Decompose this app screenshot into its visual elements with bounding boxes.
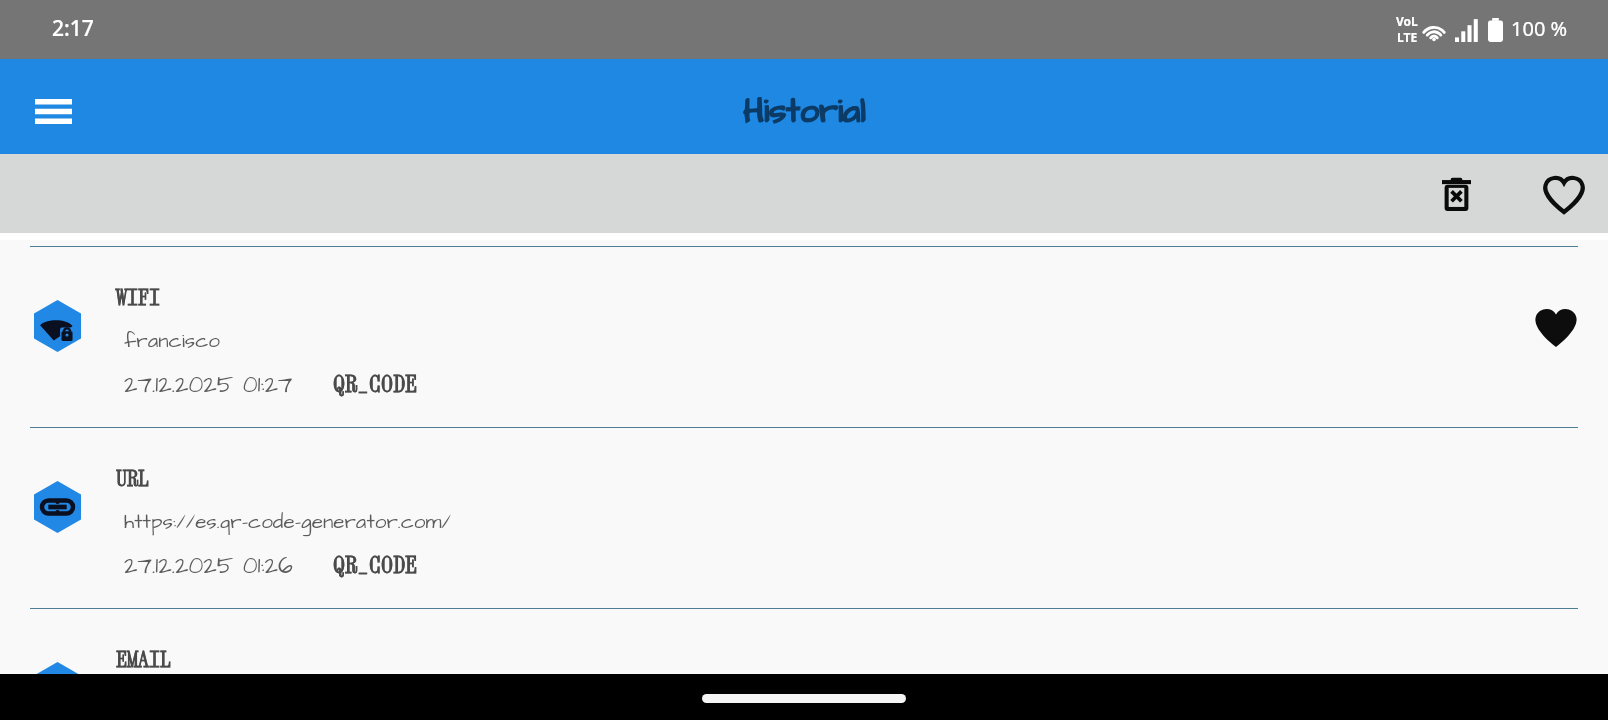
button[interactable]: Delete — [1422, 160, 1490, 228]
button[interactable]: EMAIL — [0, 608, 1608, 720]
staticText: QR_CODE — [333, 550, 417, 579]
staticText: WIFI — [116, 284, 161, 310]
staticText: WIFI — [116, 284, 161, 310]
staticText: LTE — [1397, 29, 1418, 45]
staticText: URL — [116, 465, 150, 491]
staticText: Historial — [744, 87, 867, 134]
staticText: QR_CODE — [333, 369, 417, 398]
button[interactable]: Favorite — [1525, 296, 1587, 358]
staticText: Historial — [743, 88, 866, 135]
staticText: 2:17 — [52, 14, 94, 43]
button[interactable]: WIFI — [0, 246, 1608, 426]
staticText: https://es.qr-code-generator.com/ — [124, 508, 451, 537]
staticText: francisco — [124, 327, 220, 356]
staticText: VoL — [1396, 13, 1418, 29]
staticText: 27.12.2025 01:27 — [124, 369, 293, 402]
button[interactable]: Menu — [21, 79, 85, 143]
staticText: 100 % — [1511, 15, 1568, 42]
staticText: Historial — [743, 87, 866, 134]
staticText: URL — [116, 465, 150, 491]
staticText: 27.12.2025 01:26 — [124, 550, 293, 583]
staticText: EMAIL — [116, 646, 172, 672]
staticText: QR_CODE — [333, 369, 417, 398]
staticText: QR_CODE — [333, 550, 417, 579]
button[interactable]: URL — [0, 427, 1608, 607]
button[interactable]: Favorites — [1530, 160, 1598, 228]
staticText: EMAIL — [116, 646, 172, 672]
